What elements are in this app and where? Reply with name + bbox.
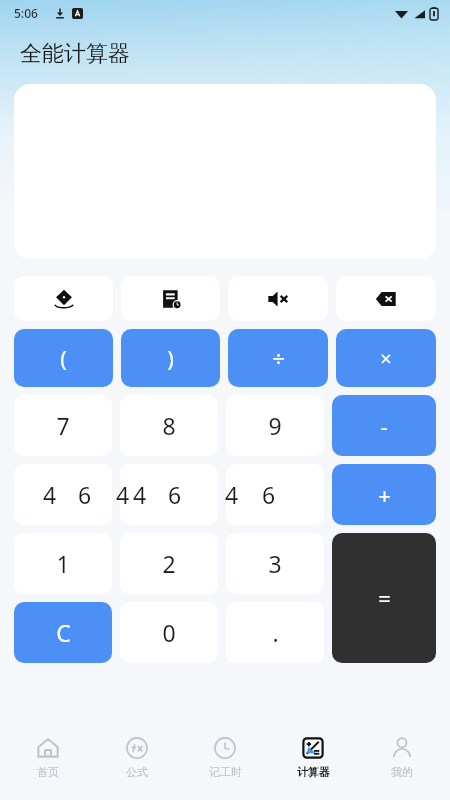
- staticText: .: [272, 617, 279, 648]
- staticText: 我的: [391, 765, 413, 779]
- button[interactable]: History: [121, 276, 220, 321]
- button[interactable]: 3: [226, 533, 324, 594]
- staticText: 8: [162, 410, 176, 441]
- staticText: 记工时: [209, 765, 242, 779]
- staticText: 4: [133, 479, 147, 510]
- staticText: 4: [116, 479, 130, 510]
- button[interactable]: 记工时: [185, 732, 265, 783]
- staticText: ÷: [272, 343, 285, 373]
- button[interactable]: ÷: [228, 329, 328, 387]
- button[interactable]: 8: [120, 395, 218, 456]
- button[interactable]: Unit converter: [14, 276, 113, 321]
- button[interactable]: 7: [14, 395, 112, 456]
- staticText: 0: [162, 617, 176, 648]
- staticText: C: [56, 617, 71, 648]
- staticText: +: [378, 480, 391, 510]
- button[interactable]: 计算器: [273, 732, 353, 783]
- staticText: 4: [225, 479, 239, 510]
- button[interactable]: [14, 464, 112, 525]
- staticText: 公式: [126, 765, 148, 779]
- staticText: 首页: [37, 765, 59, 779]
- button[interactable]: +: [332, 464, 436, 525]
- button[interactable]: 0: [120, 602, 218, 663]
- staticText: 1: [56, 548, 70, 579]
- button[interactable]: Backspace: [336, 276, 436, 321]
- button[interactable]: ×: [336, 329, 436, 387]
- button[interactable]: [120, 464, 218, 525]
- button[interactable]: 我的: [362, 732, 442, 783]
- button[interactable]: 公式: [97, 732, 177, 783]
- button[interactable]: 首页: [8, 732, 88, 783]
- button[interactable]: (: [14, 329, 113, 387]
- button[interactable]: 2: [120, 533, 218, 594]
- staticText: 6: [262, 479, 276, 510]
- button[interactable]: ): [121, 329, 220, 387]
- staticText: 6: [78, 479, 92, 510]
- staticText: 7: [56, 410, 70, 441]
- button[interactable]: [226, 464, 324, 525]
- staticText: 计算器: [297, 765, 330, 779]
- staticText: =: [378, 583, 391, 613]
- staticText: 3: [268, 548, 282, 579]
- staticText: 2: [162, 548, 176, 579]
- button[interactable]: Mute: [228, 276, 328, 321]
- staticText: 5:06: [14, 5, 38, 21]
- staticText: 6: [168, 479, 182, 510]
- staticText: ×: [380, 345, 392, 372]
- button[interactable]: .: [226, 602, 324, 663]
- staticText: -: [380, 411, 388, 441]
- staticText: 4: [43, 479, 57, 510]
- button[interactable]: =: [332, 533, 436, 663]
- button[interactable]: C: [14, 602, 112, 663]
- button[interactable]: -: [332, 395, 436, 456]
- button[interactable]: 1: [14, 533, 112, 594]
- staticText: 全能计算器: [20, 40, 130, 68]
- staticText: 9: [268, 410, 282, 441]
- staticText: ): [167, 343, 174, 373]
- staticText: (: [60, 343, 67, 373]
- button[interactable]: 9: [226, 395, 324, 456]
